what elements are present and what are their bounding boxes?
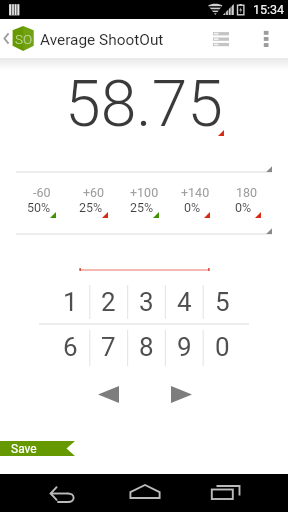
button[interactable]: 9 <box>165 324 203 369</box>
staticText: 0% <box>235 200 252 215</box>
staticText: 0 <box>215 332 230 362</box>
staticText: Save <box>11 442 37 456</box>
button[interactable]: -60 <box>16 184 68 228</box>
staticText: 2 <box>101 287 116 317</box>
staticText: 4 <box>177 287 192 317</box>
staticText: 25% <box>130 200 154 215</box>
staticText: 3 <box>139 287 154 317</box>
staticText: 50% <box>27 200 51 215</box>
staticText: 6 <box>63 332 78 362</box>
button[interactable]: Save <box>0 441 75 456</box>
button[interactable]: 8 <box>127 324 165 369</box>
button[interactable]: Next <box>162 380 200 410</box>
button[interactable]: 0 <box>203 324 241 369</box>
staticText: 180 <box>236 185 258 200</box>
staticText: Average ShootOut <box>40 31 164 49</box>
staticText: +60 <box>83 185 105 200</box>
button[interactable]: 1 <box>52 279 89 324</box>
button[interactable]: 4 <box>165 279 203 324</box>
staticText: 9 <box>177 332 192 362</box>
button[interactable]: +100 <box>119 184 170 228</box>
button[interactable]: 6 <box>52 324 89 369</box>
staticText: 8 <box>139 332 154 362</box>
staticText: -60 <box>33 185 51 200</box>
staticText: 25% <box>79 200 103 215</box>
button[interactable]: List view <box>202 19 240 58</box>
staticText: 0% <box>184 200 201 215</box>
staticText: +100 <box>130 185 159 200</box>
button[interactable]: 2 <box>89 279 127 324</box>
button[interactable]: 3 <box>127 279 165 324</box>
button[interactable]: Navigate up <box>0 19 38 58</box>
staticText: 7 <box>101 332 116 362</box>
staticText: 5 <box>215 287 230 317</box>
button[interactable]: 7 <box>89 324 127 369</box>
button[interactable]: Recent apps <box>205 474 247 512</box>
button[interactable]: Home <box>124 474 166 512</box>
staticText: 1 <box>63 287 78 317</box>
button[interactable]: 180 <box>221 184 272 228</box>
button[interactable]: +60 <box>68 184 119 228</box>
staticText: 58.75 <box>65 66 224 141</box>
button[interactable]: Previous <box>89 380 127 410</box>
button[interactable]: 5 <box>203 279 241 324</box>
staticText: SO <box>15 31 33 47</box>
button[interactable]: More options <box>252 19 282 58</box>
staticText: 15:34 <box>253 2 285 17</box>
button[interactable]: Back <box>42 474 86 512</box>
staticText: +140 <box>181 185 210 200</box>
button[interactable]: +140 <box>170 184 221 228</box>
